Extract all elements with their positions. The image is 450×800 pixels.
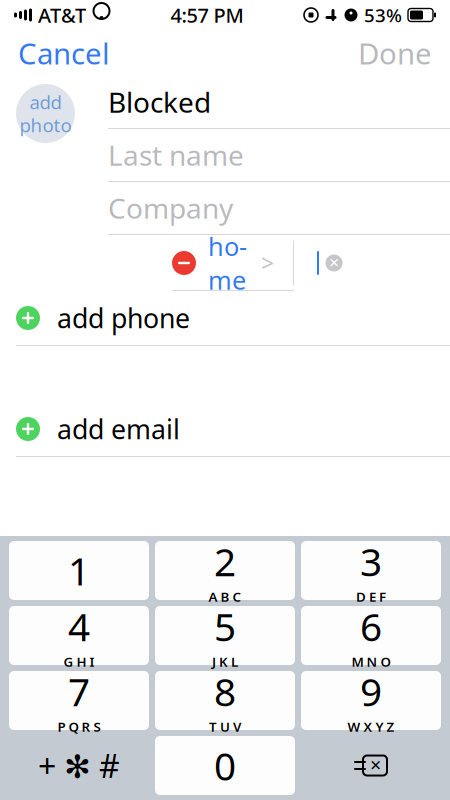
staticText: >	[261, 248, 274, 278]
staticText: Cancel	[18, 33, 110, 72]
staticText: W X Y Z	[347, 718, 394, 735]
staticText: Last name	[108, 136, 244, 174]
staticText: Blocked	[108, 83, 211, 121]
button[interactable]: 7	[9, 671, 149, 730]
button[interactable]: Delete	[301, 736, 441, 795]
staticText: 1	[68, 545, 90, 596]
button[interactable]: Cancel	[0, 25, 128, 80]
button[interactable]: 6	[301, 606, 441, 665]
staticText: D E F	[356, 588, 386, 605]
button[interactable]: Plus star pound	[9, 736, 149, 795]
button[interactable]: add email	[0, 402, 450, 456]
staticText: add email	[57, 411, 180, 447]
staticText: 5	[214, 600, 236, 652]
staticText: ✕	[328, 255, 339, 270]
staticText: 6	[360, 600, 382, 652]
button[interactable]: 0	[155, 736, 295, 795]
staticText: ✕	[369, 757, 381, 774]
button[interactable]: Clear text	[319, 248, 349, 278]
staticText: 53%	[364, 3, 402, 27]
button[interactable]: 8	[155, 671, 295, 730]
staticText: 9	[360, 665, 382, 717]
staticText: G H I	[63, 653, 94, 670]
staticText: 7	[68, 665, 90, 717]
staticText: Done	[358, 33, 432, 72]
staticText: + ✻ #	[38, 744, 120, 787]
button[interactable]: 3	[301, 541, 441, 600]
staticText: add	[29, 90, 61, 114]
button[interactable]: 2	[155, 541, 295, 600]
staticText: add phone	[57, 300, 190, 336]
staticText: A B C	[208, 588, 241, 605]
button[interactable]: home	[156, 229, 294, 297]
button[interactable]: 1	[9, 541, 149, 600]
staticText: T U V	[209, 718, 241, 735]
staticText: 3	[360, 535, 382, 587]
button[interactable]: 4	[9, 606, 149, 665]
button[interactable]: 5	[155, 606, 295, 665]
staticText: 0	[214, 740, 236, 791]
staticText: 8	[214, 665, 236, 717]
staticText: home	[208, 229, 247, 297]
staticText: AT&T	[38, 2, 86, 28]
staticText: photo	[19, 112, 71, 137]
staticText: J K L	[212, 653, 238, 670]
staticText: P Q R S	[57, 718, 100, 735]
staticText: M N O	[351, 653, 390, 670]
staticText: Company	[108, 189, 233, 227]
staticText: 2	[214, 535, 236, 587]
staticText: 4:57 PM	[170, 2, 243, 28]
button[interactable]: 9	[301, 671, 441, 730]
button[interactable]: add phone	[0, 291, 450, 345]
staticText: 4	[68, 600, 90, 652]
button[interactable]: Done	[340, 25, 450, 80]
button[interactable]: add	[16, 84, 75, 143]
